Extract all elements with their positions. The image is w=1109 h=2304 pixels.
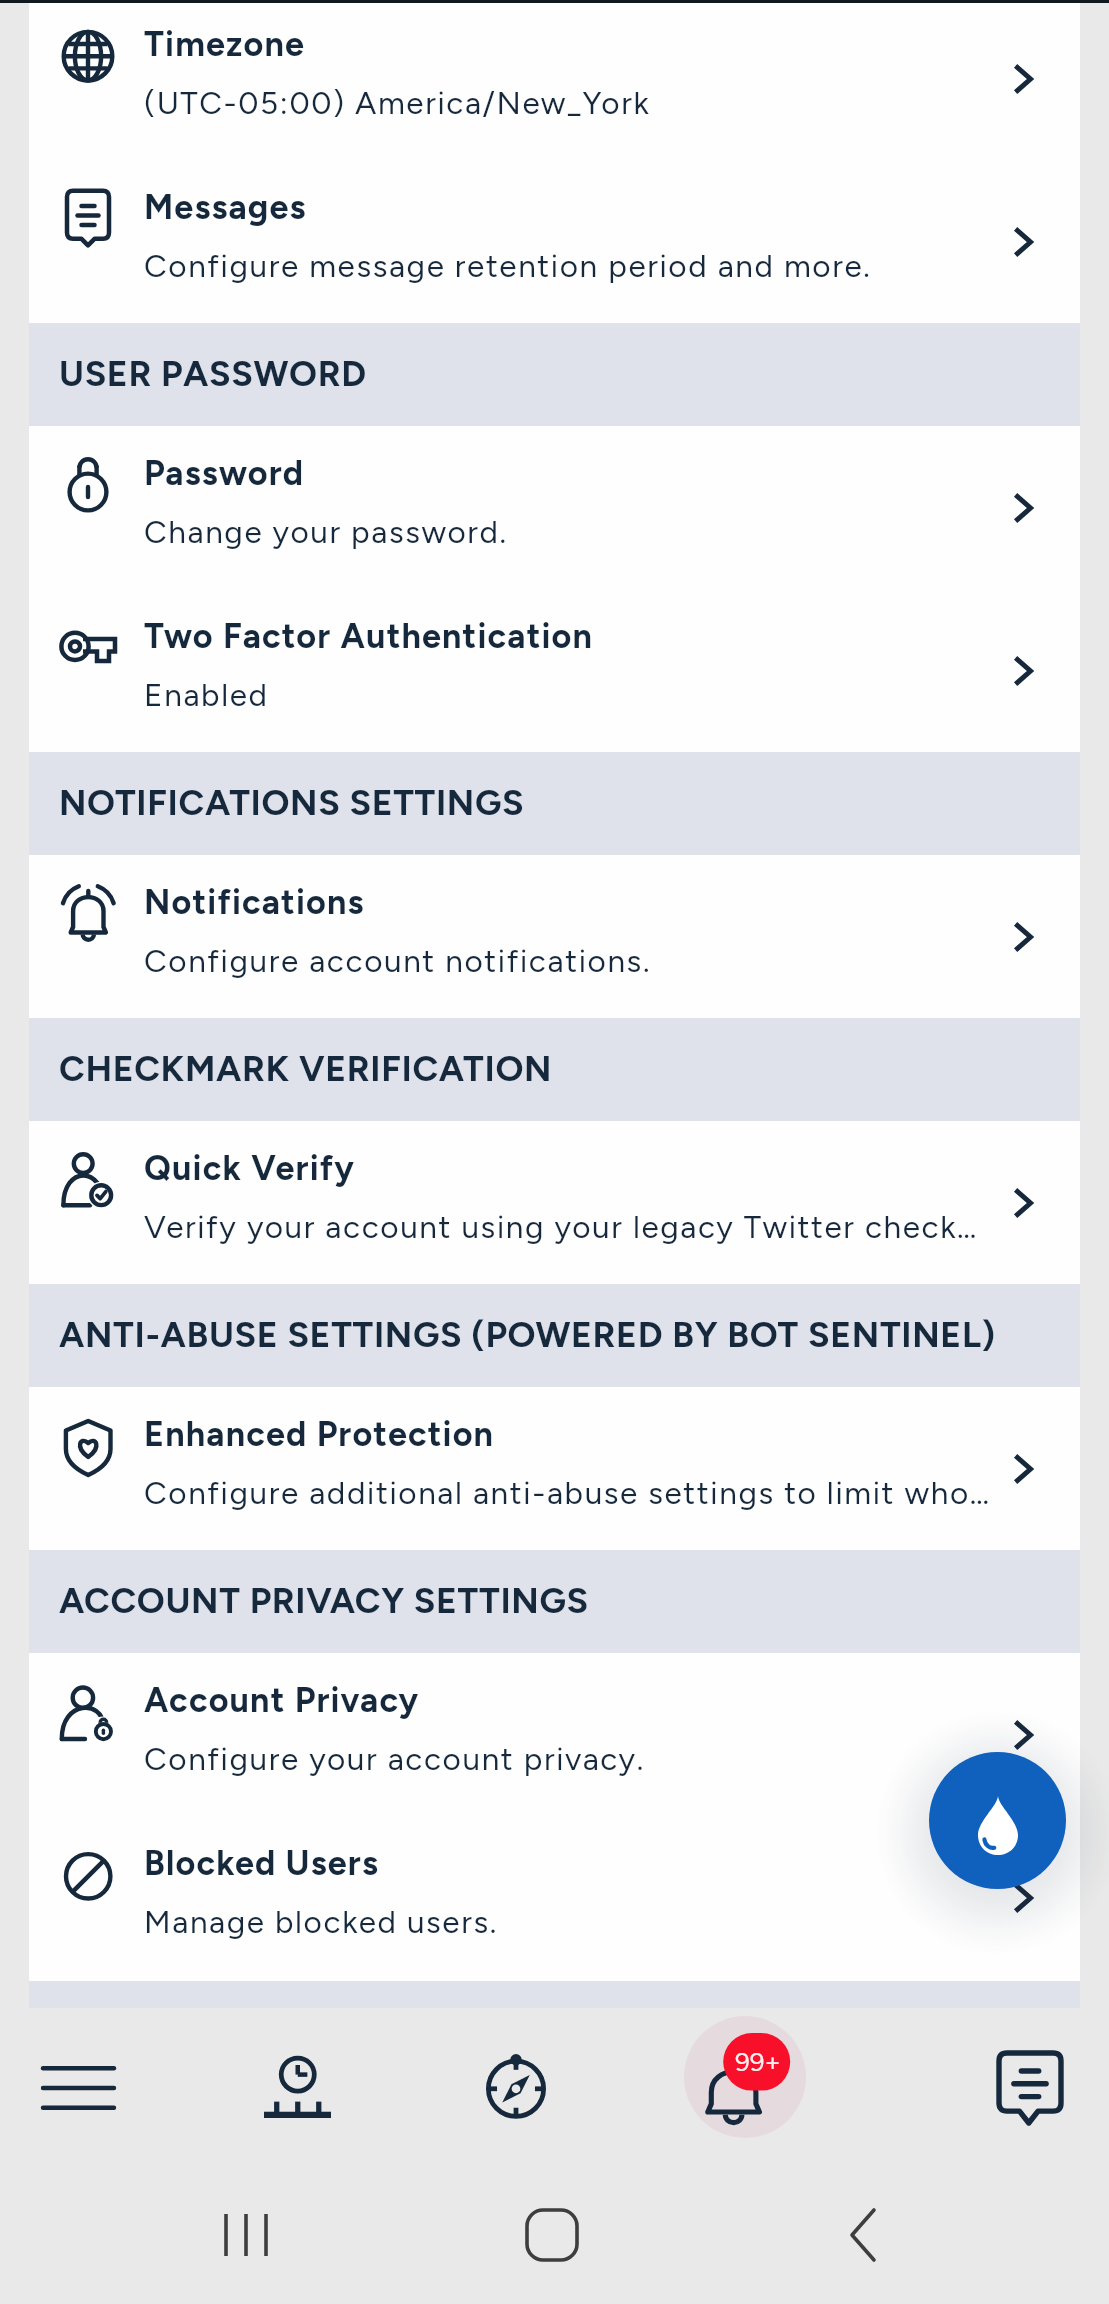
button[interactable]: Blocked Users (29, 1816, 1080, 1978)
staticText: ACCOUNT PRIVACY SETTINGS (59, 1579, 589, 1622)
staticText: Configure message retention period and m… (144, 247, 992, 285)
staticText: Messages (144, 187, 979, 228)
staticText: Enhanced Protection (144, 1414, 979, 1455)
staticText: Change your password. (144, 513, 992, 551)
staticText: Password (144, 453, 979, 494)
staticText: CHECKMARK VERIFICATION (59, 1047, 553, 1090)
staticText: Notifications (144, 882, 979, 923)
button[interactable]: Explore (486, 2054, 546, 2117)
button[interactable]: Account Privacy (29, 1653, 1080, 1816)
button[interactable]: Quick Verify (29, 1121, 1080, 1284)
button[interactable]: New post (929, 1752, 1066, 1889)
staticText: Manage blocked users. (144, 1903, 992, 1941)
button[interactable]: Menu (43, 2066, 114, 2110)
staticText: Verify your account using your legacy Tw… (144, 1208, 992, 1246)
staticText: USER PASSWORD (59, 352, 367, 395)
staticText: ANTI-ABUSE SETTINGS (POWERED BY BOT SENT… (59, 1313, 996, 1356)
staticText: Account Privacy (144, 1680, 979, 1721)
button[interactable]: Enhanced Protection (29, 1387, 1080, 1550)
button[interactable]: Notifications (29, 855, 1080, 1018)
button[interactable]: Two Factor Authentication (29, 589, 1080, 752)
staticText: (UTC-05:00) America/New_York (144, 84, 992, 122)
staticText: Quick Verify (144, 1148, 979, 1189)
staticText: Blocked Users (144, 1843, 979, 1884)
button[interactable]: Password (29, 426, 1080, 589)
button[interactable]: Messages (29, 160, 1080, 323)
staticText: Two Factor Authentication (144, 616, 979, 657)
staticText: Configure additional anti-abuse settings… (144, 1474, 992, 1512)
staticText: Configure account notifications. (144, 942, 992, 980)
staticText: NOTIFICATIONS SETTINGS (59, 781, 525, 824)
staticText: 99+ (735, 2046, 781, 2077)
staticText: Enabled (144, 676, 992, 714)
button[interactable]: Notifications (679, 2020, 795, 2140)
button[interactable]: Timezone (29, 0, 1080, 160)
button[interactable]: Messages (999, 2053, 1061, 2123)
button[interactable]: Schedule (264, 2056, 331, 2118)
staticText: Timezone (144, 24, 979, 65)
staticText: Configure your account privacy. (144, 1740, 992, 1778)
